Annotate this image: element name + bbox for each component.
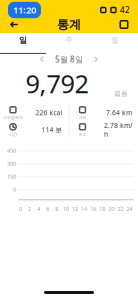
staticText: 7.64 km (106, 108, 132, 117)
button[interactable]: Share (115, 15, 133, 33)
staticText: 월 (111, 35, 119, 45)
staticText: 9,792 (25, 67, 88, 100)
staticText: 300 (7, 160, 16, 167)
staticText: 18 (99, 205, 105, 212)
staticText: 11:20 (13, 4, 36, 16)
staticText: 16 (90, 205, 96, 212)
staticText: 114 분 (41, 125, 62, 134)
button[interactable]: 주 (46, 27, 92, 54)
staticText: 6 (46, 205, 49, 212)
staticText: 8 (55, 205, 58, 212)
staticText: 4 (37, 205, 40, 212)
staticText: 0 (13, 186, 16, 193)
staticText: 42 (120, 5, 130, 15)
staticText: 통계 (57, 17, 81, 32)
staticText: 14 (81, 205, 87, 212)
staticText: 450 (7, 147, 16, 154)
button[interactable]: Back (5, 15, 23, 33)
button[interactable]: Next day (91, 54, 101, 64)
staticText: 12 (72, 205, 78, 212)
staticText: 2 (28, 205, 31, 212)
staticText: 시간 (9, 132, 17, 137)
staticText: 10 (63, 205, 69, 212)
staticText: 2.78 km/h (104, 121, 132, 139)
staticText: 5월 8일 (55, 54, 83, 65)
staticText: 24 (126, 205, 132, 212)
staticText: 속도 (78, 132, 86, 137)
staticText: 150 (7, 173, 16, 180)
button[interactable]: 일 (0, 27, 46, 54)
button[interactable]: 월 (92, 27, 138, 54)
button[interactable]: Previous day (37, 54, 47, 64)
staticText: 소모칼로리 (3, 115, 23, 120)
staticText: 걸음 (114, 89, 128, 97)
staticText: 226 kcal (35, 108, 62, 117)
staticText: 0 (19, 205, 22, 212)
staticText: 22 (117, 205, 123, 212)
staticText: 20 (108, 205, 114, 212)
staticText: 일 (19, 35, 27, 45)
staticText: 거리 (78, 115, 86, 120)
staticText: 주 (65, 35, 73, 45)
